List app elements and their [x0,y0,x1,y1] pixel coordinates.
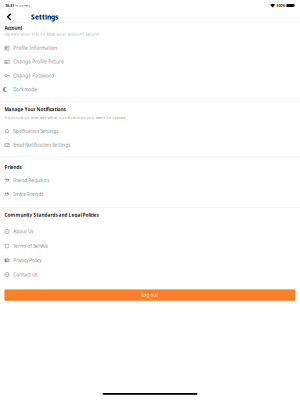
button[interactable]: Notification Settings [0,124,300,138]
staticText: Update your info to keep your account se… [4,31,99,37]
staticText: Contact Us [13,272,37,278]
button[interactable]: Dark mode [0,82,300,96]
staticText: Email Notification Settings [13,142,70,148]
staticText: Change Password [13,73,54,79]
staticText: Friends [4,164,21,170]
staticText: About Us [13,229,33,235]
staticText: Controls to manage what notifications yo… [4,114,126,120]
staticText: Account [4,25,22,31]
button[interactable]: Invite Friends [0,187,300,201]
staticText: Log out [141,292,158,298]
button[interactable]: Profile Information [0,41,300,55]
staticText: Notification Settings [13,128,58,134]
button[interactable]: Friend Requests [0,174,300,187]
button[interactable]: Terms of Service [0,239,300,253]
staticText: Settings [31,12,58,21]
staticText: Terms of Service [13,243,48,249]
button[interactable]: Contact Us [0,268,300,282]
staticText: Community Standards and Legal Policies [4,212,98,218]
button[interactable]: Log out [4,289,296,301]
staticText: Profile Information [13,45,57,51]
staticText: Friend Requests [13,177,49,184]
staticText: Privacy Policy [13,257,41,263]
staticText: 16:31 [5,3,14,8]
button[interactable]: Change Profile Picture [0,55,300,69]
button[interactable]: Change Password [0,69,300,83]
button[interactable]: Back [2,11,16,23]
staticText: Fri 20 Nov [15,4,29,7]
button[interactable]: Privacy Policy [0,253,300,268]
staticText: Invite Friends [13,191,43,197]
staticText: Manage Your Notifications [4,106,65,113]
button[interactable]: Email Notification Settings [0,138,300,152]
staticText: 100% [276,3,285,8]
staticText: Change Profile Picture [13,59,64,65]
button[interactable]: About Us [0,224,300,239]
staticText: Dark mode [13,86,37,92]
